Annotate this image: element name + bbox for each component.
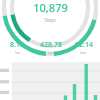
button[interactable]: Activity bar chart [0, 60, 100, 100]
button[interactable]: 428.78 [34, 40, 67, 55]
staticText: 10,879 [33, 0, 68, 15]
staticText: 428.78 [40, 40, 62, 50]
button[interactable]: Step progress rings [0, 0, 100, 58]
staticText: Steps [44, 17, 56, 23]
staticText: 8.13 [10, 40, 24, 50]
button[interactable]: 02:14 [67, 40, 100, 55]
staticText: kcal [48, 51, 54, 55]
staticText: 02:14 [75, 40, 93, 50]
staticText: km [15, 51, 20, 55]
staticText: time [80, 51, 87, 55]
button[interactable]: 8.13 [0, 40, 34, 55]
